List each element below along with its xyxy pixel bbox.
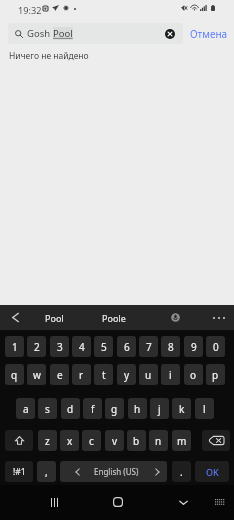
button[interactable]: Backspace (202, 430, 230, 451)
button[interactable]: 4 (72, 336, 91, 357)
staticText: 8 (168, 340, 174, 354)
button[interactable]: u (139, 364, 158, 385)
staticText: 3 (57, 340, 63, 354)
button[interactable]: 8 (161, 336, 180, 357)
staticText: 1 (12, 340, 18, 354)
button[interactable]: More options (205, 305, 232, 330)
staticText: x (67, 434, 73, 448)
staticText: c (89, 434, 94, 448)
button[interactable]: 6 (117, 336, 136, 357)
staticText: Poole (102, 312, 126, 324)
staticText: r (79, 368, 84, 382)
button[interactable]: Clear text (161, 23, 178, 44)
button[interactable]: f (83, 398, 102, 419)
staticText: m (177, 434, 187, 448)
staticText: 19:32 (18, 4, 42, 17)
button[interactable]: Hide keyboard (206, 489, 234, 515)
button[interactable]: i (161, 364, 180, 385)
button[interactable]: h (128, 398, 147, 419)
button[interactable]: Back (169, 489, 197, 515)
button[interactable]: Gosh (8, 23, 183, 44)
staticText: u (145, 368, 152, 382)
staticText: k (179, 402, 185, 416)
staticText: 2 (34, 340, 40, 354)
button[interactable]: English (US) (60, 461, 167, 482)
button[interactable]: e (50, 364, 69, 385)
staticText: e (57, 368, 63, 382)
staticText: z (45, 434, 50, 448)
staticText: English (US) (94, 466, 139, 477)
staticText: d (67, 402, 74, 416)
button[interactable]: OK (195, 461, 229, 482)
staticText: Ничего не найдено (9, 50, 89, 62)
staticText: 7 (146, 340, 152, 354)
button[interactable]: k (172, 398, 191, 419)
button[interactable]: o (184, 364, 203, 385)
staticText: 6 (124, 340, 130, 354)
button[interactable]: m (172, 430, 191, 451)
staticText: Pool (53, 27, 73, 40)
staticText: OK (206, 466, 219, 478)
staticText: !#1 (13, 466, 26, 478)
staticText: f (91, 402, 95, 416)
button[interactable]: b (127, 430, 146, 451)
button[interactable]: 7 (139, 336, 158, 357)
button[interactable]: a (16, 398, 35, 419)
staticText: 9 (191, 340, 197, 354)
button[interactable]: n (149, 430, 168, 451)
button[interactable]: d (61, 398, 80, 419)
button[interactable]: Previous suggestions (2, 305, 29, 330)
staticText: y (124, 368, 130, 382)
staticText: Pool (45, 312, 64, 324)
button[interactable]: Voice input (162, 305, 188, 330)
button[interactable]: y (117, 364, 136, 385)
staticText: 0 (213, 340, 219, 354)
button[interactable]: r (72, 364, 91, 385)
button[interactable]: !#1 (5, 461, 33, 482)
staticText: a (23, 402, 29, 416)
staticText: g (111, 402, 118, 416)
staticText: w (33, 368, 41, 382)
staticText: v (112, 434, 118, 448)
button[interactable]: w (27, 364, 46, 385)
button[interactable]: Отмена (186, 23, 231, 44)
button[interactable]: . (172, 461, 191, 482)
staticText: q (11, 368, 18, 382)
button[interactable]: Poole (88, 305, 139, 330)
staticText: o (190, 368, 197, 382)
button[interactable]: 0 (206, 336, 225, 357)
button[interactable]: Pool (29, 305, 79, 330)
button[interactable]: Recent apps (40, 489, 68, 515)
button[interactable]: v (105, 430, 124, 451)
button[interactable]: p (206, 364, 225, 385)
button[interactable]: z (38, 430, 57, 451)
staticText: h (134, 402, 141, 416)
button[interactable]: j (150, 398, 169, 419)
staticText: Отмена (190, 27, 228, 41)
button[interactable]: 3 (50, 336, 69, 357)
button[interactable]: Shift (5, 430, 33, 451)
button[interactable]: x (60, 430, 79, 451)
staticText: 4 (79, 340, 85, 354)
button[interactable]: q (5, 364, 24, 385)
staticText: 5 (101, 340, 107, 354)
staticText: , (45, 465, 48, 479)
button[interactable]: t (94, 364, 113, 385)
button[interactable]: 1 (5, 336, 24, 357)
button[interactable]: Home (104, 489, 132, 515)
staticText: t (102, 368, 106, 382)
button[interactable]: c (82, 430, 101, 451)
button[interactable]: 9 (184, 336, 203, 357)
staticText: i (169, 368, 172, 382)
button[interactable]: s (38, 398, 57, 419)
staticText: . (180, 465, 183, 479)
staticText: j (158, 402, 161, 416)
button[interactable]: , (37, 461, 56, 482)
button[interactable]: 2 (27, 336, 46, 357)
button[interactable]: l (195, 398, 214, 419)
staticText: p (212, 368, 219, 382)
staticText: s (45, 402, 50, 416)
button[interactable]: 5 (94, 336, 113, 357)
button[interactable]: g (105, 398, 124, 419)
staticText: Gosh (27, 27, 53, 40)
